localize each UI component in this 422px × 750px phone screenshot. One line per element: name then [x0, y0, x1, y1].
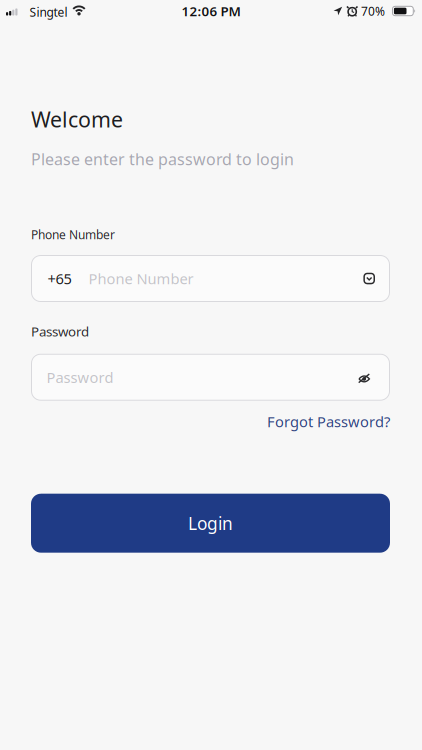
staticText: Password [46, 367, 113, 387]
staticText: Welcome [31, 105, 123, 133]
staticText: Singtel [29, 4, 67, 20]
button[interactable]: Forgot Password? [267, 412, 390, 431]
staticText: Login [188, 512, 233, 535]
staticText: +65 [47, 269, 71, 288]
staticText: Forgot Password? [267, 412, 390, 431]
button[interactable]: +65 [31, 255, 390, 302]
button[interactable]: Password [31, 354, 390, 401]
staticText: 70% [361, 3, 385, 19]
staticText: Please enter the password to login [31, 148, 294, 169]
button[interactable]: Login [31, 494, 390, 553]
staticText: Phone Number [31, 227, 115, 242]
button[interactable] [358, 372, 370, 382]
staticText: 12:06 PM [181, 2, 240, 20]
staticText: Password [31, 322, 89, 340]
button[interactable] [363, 273, 375, 284]
staticText: Phone Number [88, 269, 193, 288]
